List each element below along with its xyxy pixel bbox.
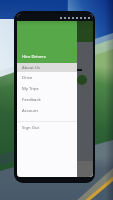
button[interactable]: Account: [17, 105, 77, 116]
button[interactable]: My location: [77, 75, 87, 85]
button[interactable]: My Trips: [17, 83, 77, 94]
staticText: Hire Drivers: [22, 54, 46, 60]
staticText: Drive: [22, 75, 33, 81]
button[interactable]: Feedback: [17, 94, 77, 105]
staticText: Sign Out: [22, 125, 40, 131]
button[interactable]: About Us: [17, 63, 77, 72]
staticText: Feedback: [22, 97, 41, 103]
staticText: My Trips: [22, 86, 39, 92]
button[interactable]: Sign Out: [17, 122, 77, 133]
staticText: Account: [22, 108, 38, 114]
button[interactable]: Drive: [17, 72, 77, 83]
staticText: About Us: [22, 65, 41, 71]
